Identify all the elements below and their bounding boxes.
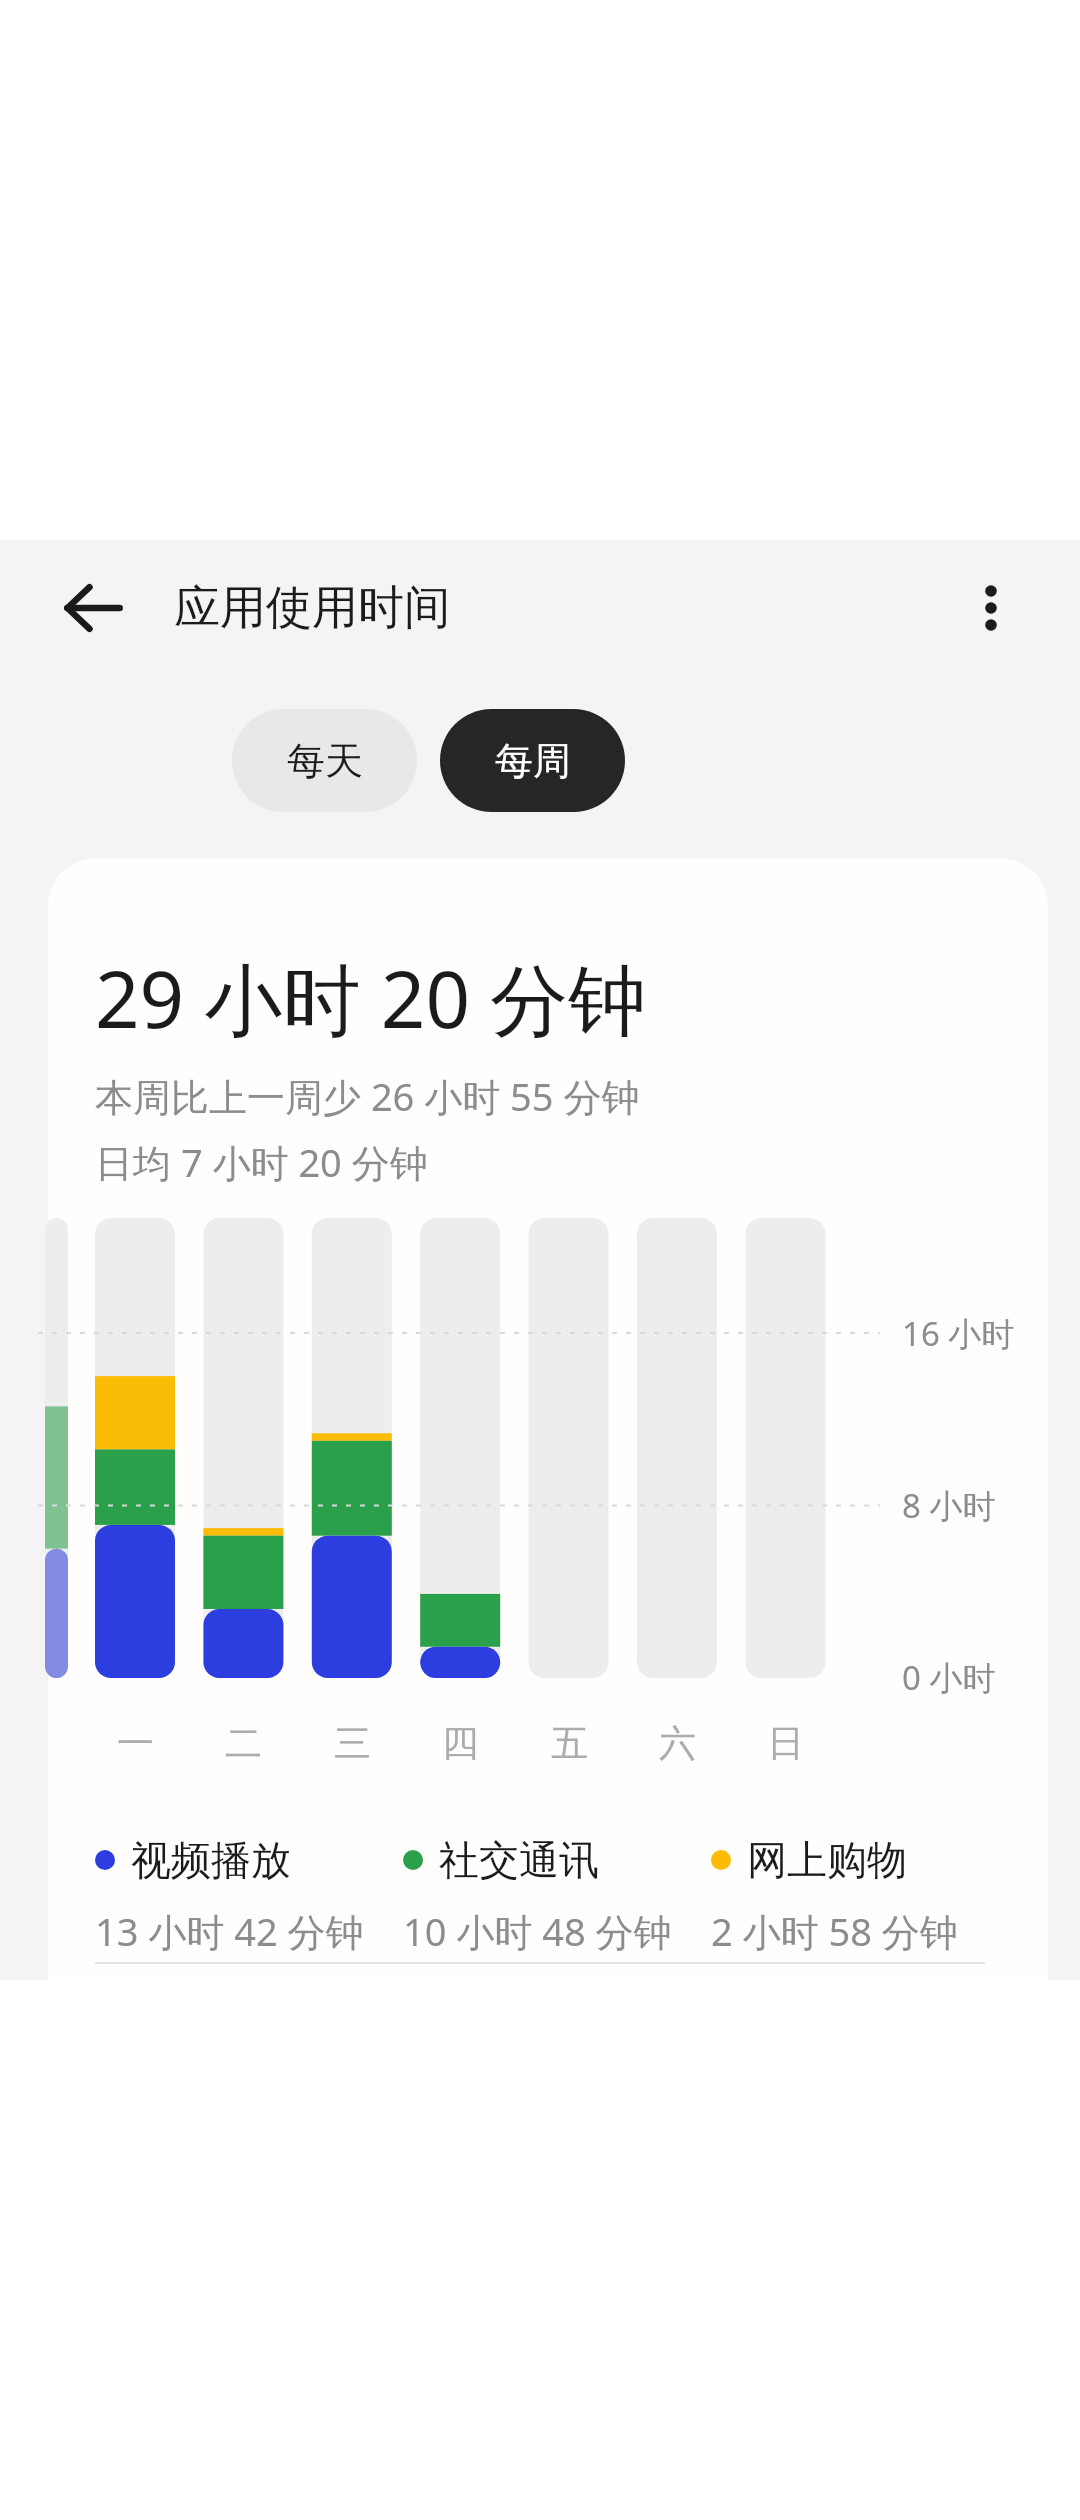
staticText: 应用使用时间 (174, 579, 450, 637)
staticText: 二 (225, 1720, 262, 1767)
staticText: 社交通讯 (439, 1835, 599, 1885)
staticText: 每周 (495, 737, 571, 785)
staticText: 2 小时 58 分钟 (711, 1905, 958, 1957)
staticText: 六 (659, 1720, 696, 1767)
button[interactable]: More options (942, 559, 1040, 657)
staticText: 10 小时 48 分钟 (403, 1905, 672, 1957)
button[interactable]: 每天 (232, 709, 417, 812)
staticText: 0 小时 (902, 1655, 996, 1700)
staticText: 每天 (287, 737, 363, 785)
staticText: 16 小时 (902, 1311, 1015, 1356)
staticText: 五 (551, 1720, 588, 1767)
staticText: 四 (442, 1720, 479, 1767)
staticText: 8 小时 (902, 1483, 996, 1528)
staticText: 日均 7 小时 20 分钟 (95, 1136, 428, 1188)
staticText: 网上购物 (747, 1835, 907, 1885)
staticText: 三 (334, 1720, 371, 1767)
staticText: 一 (117, 1720, 154, 1767)
staticText: 视频播放 (131, 1835, 291, 1885)
staticText: 13 小时 42 分钟 (95, 1905, 364, 1957)
staticText: 日 (767, 1720, 804, 1767)
button[interactable]: Back (44, 559, 142, 657)
button[interactable]: 每周 (440, 709, 625, 812)
staticText: 本周比上一周少 26 小时 55 分钟 (95, 1070, 640, 1122)
staticText: 29 小时 20 分钟 (95, 945, 647, 1052)
